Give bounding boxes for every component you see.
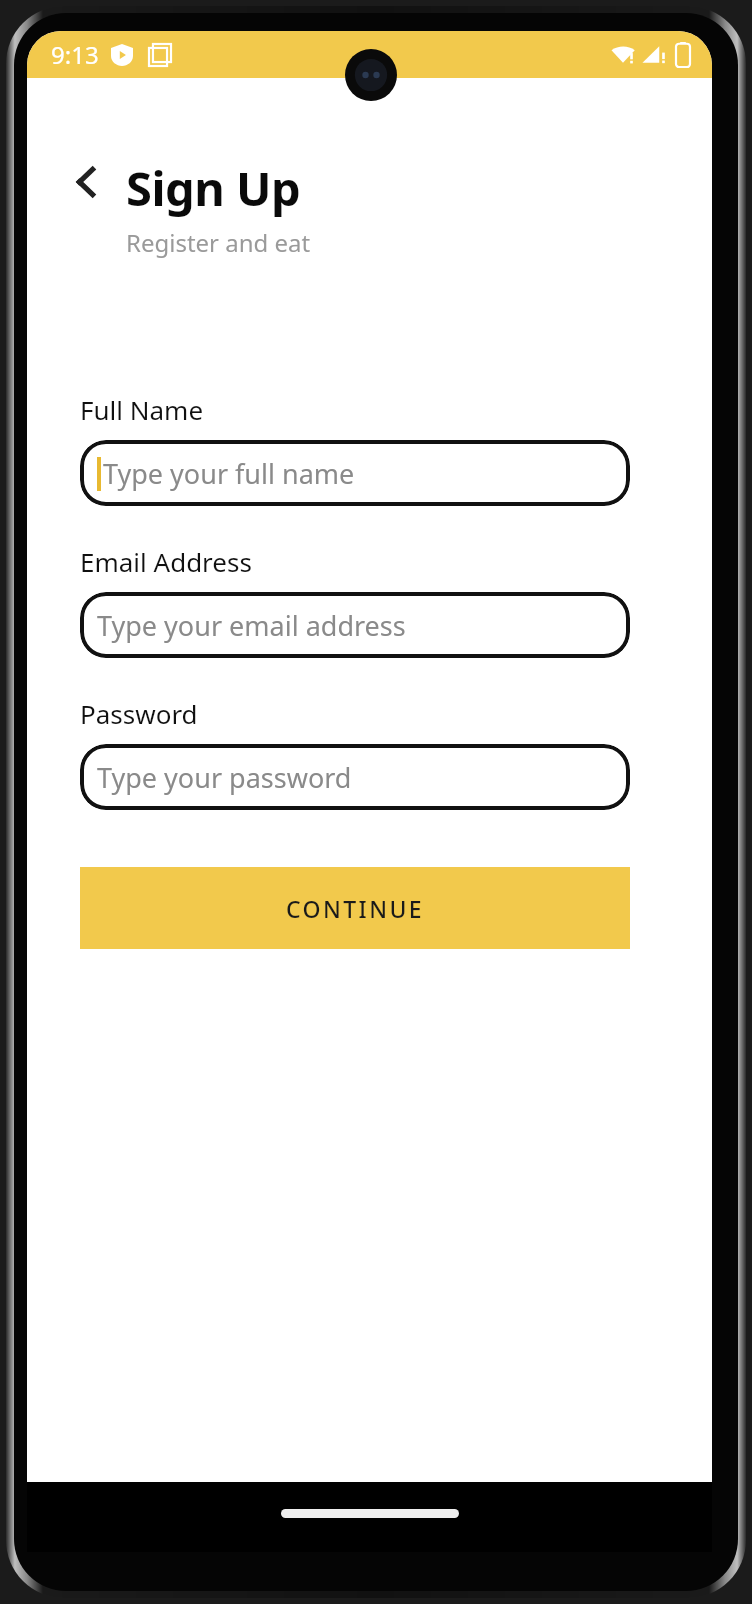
button[interactable]: Back: [60, 156, 112, 208]
button[interactable]: CONTINUE: [80, 867, 630, 949]
staticText: Type your full name: [103, 455, 355, 492]
staticText: Type your password: [97, 759, 352, 796]
staticText: CONTINUE: [286, 893, 424, 924]
staticText: Password: [80, 696, 198, 731]
staticText: Full Name: [80, 392, 204, 427]
staticText: Register and eat: [126, 226, 311, 259]
button[interactable]: Type your full name: [80, 440, 630, 506]
staticText: Email Address: [80, 544, 252, 579]
staticText: Type your email address: [97, 607, 406, 644]
staticText: Sign Up: [126, 156, 301, 220]
staticText: 9:13: [51, 38, 99, 71]
button[interactable]: Type your email address: [80, 592, 630, 658]
button[interactable]: Type your password: [80, 744, 630, 810]
